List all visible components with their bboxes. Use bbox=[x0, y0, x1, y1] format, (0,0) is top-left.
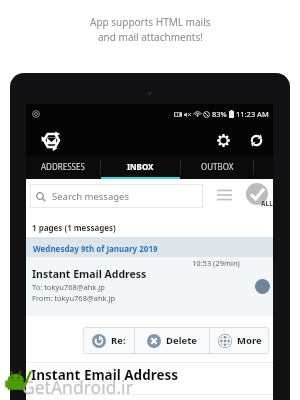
button[interactable]: INBOX bbox=[101, 156, 180, 179]
staticText: and mail attachments! bbox=[98, 30, 203, 44]
staticText: GetAndroid.ir bbox=[22, 375, 133, 399]
staticText: ADDRESSES bbox=[41, 161, 85, 172]
button[interactable]: Sort bbox=[214, 185, 234, 205]
staticText: Delete bbox=[166, 334, 197, 347]
staticText: From: tokyu768@ahk.jp bbox=[32, 293, 116, 303]
button[interactable]: Refresh bbox=[244, 128, 268, 152]
button[interactable]: ADDRESSES bbox=[26, 156, 100, 179]
button[interactable]: OUTBOX bbox=[181, 156, 253, 179]
staticText: Search messages bbox=[52, 190, 129, 203]
button[interactable]: Delete bbox=[135, 327, 209, 354]
staticText: ALL bbox=[261, 199, 273, 208]
staticText: Instant Email Address bbox=[31, 366, 179, 384]
button[interactable]: 10:53 (29min) bbox=[26, 257, 273, 316]
staticText: App supports HTML mails bbox=[90, 15, 211, 29]
staticText: OUTBOX bbox=[201, 161, 234, 172]
staticText: INBOX bbox=[127, 161, 154, 172]
staticText: 1 pages (1 messages) bbox=[32, 222, 116, 233]
staticText: Wednesday 9th of January 2019 bbox=[33, 243, 158, 254]
staticText: More bbox=[237, 334, 262, 347]
staticText: 11:23 AM bbox=[236, 109, 269, 119]
staticText: Instant Email Address bbox=[32, 267, 147, 281]
staticText: 83% bbox=[212, 109, 227, 119]
button[interactable]: Search messages bbox=[30, 184, 203, 208]
staticText: 10:53 (29min) bbox=[192, 258, 240, 268]
staticText: Re: bbox=[111, 334, 126, 347]
button[interactable]: More bbox=[210, 327, 269, 354]
button[interactable]: Settings bbox=[211, 128, 235, 152]
button[interactable]: Select all bbox=[246, 183, 268, 205]
button[interactable]: App logo bbox=[37, 124, 65, 156]
button[interactable]: Re: bbox=[83, 327, 134, 354]
staticText: To: tokyu768@ahk.jp bbox=[32, 282, 105, 292]
